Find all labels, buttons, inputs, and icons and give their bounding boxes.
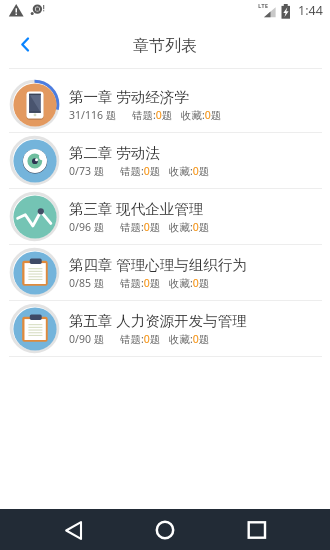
- button[interactable]: 第二章 劳动法: [0, 133, 330, 189]
- staticText: 0/96 题: [69, 220, 105, 234]
- staticText: 第一章 劳动经济学: [69, 86, 189, 106]
- staticText: 0/85 题: [69, 276, 105, 290]
- staticText: 第四章 管理心理与组织行为: [69, 254, 247, 274]
- button[interactable]: 第五章 人力资源开发与管理: [0, 301, 330, 357]
- staticText: 收藏:0题: [169, 332, 210, 346]
- staticText: 收藏:0题: [169, 276, 210, 290]
- staticText: 收藏:0题: [169, 220, 210, 234]
- staticText: 错题:0题: [120, 276, 161, 290]
- staticText: 第五章 人力资源开发与管理: [69, 310, 247, 330]
- button[interactable]: 第三章 现代企业管理: [0, 189, 330, 245]
- staticText: 错题:0题: [120, 220, 161, 234]
- button[interactable]: 第一章 劳动经济学: [0, 77, 330, 133]
- staticText: 错题:0题: [132, 108, 173, 122]
- button[interactable]: Back: [3, 23, 47, 67]
- staticText: 章节列表: [133, 36, 197, 56]
- staticText: 31/116 题: [69, 108, 117, 122]
- button[interactable]: 第四章 管理心理与组织行为: [0, 245, 330, 301]
- button[interactable]: Recents: [237, 510, 277, 550]
- staticText: 错题:0题: [120, 332, 161, 346]
- staticText: 错题:0题: [120, 164, 161, 178]
- staticText: 收藏:0题: [169, 164, 210, 178]
- button[interactable]: Back: [54, 510, 94, 550]
- button[interactable]: Home: [145, 510, 185, 550]
- staticText: 1:44: [298, 2, 323, 19]
- staticText: 收藏:0题: [181, 108, 222, 122]
- staticText: 第二章 劳动法: [69, 142, 160, 162]
- staticText: 0/90 题: [69, 332, 105, 346]
- staticText: LTE: [258, 2, 269, 10]
- staticText: 第三章 现代企业管理: [69, 198, 204, 218]
- staticText: 0/73 题: [69, 164, 105, 178]
